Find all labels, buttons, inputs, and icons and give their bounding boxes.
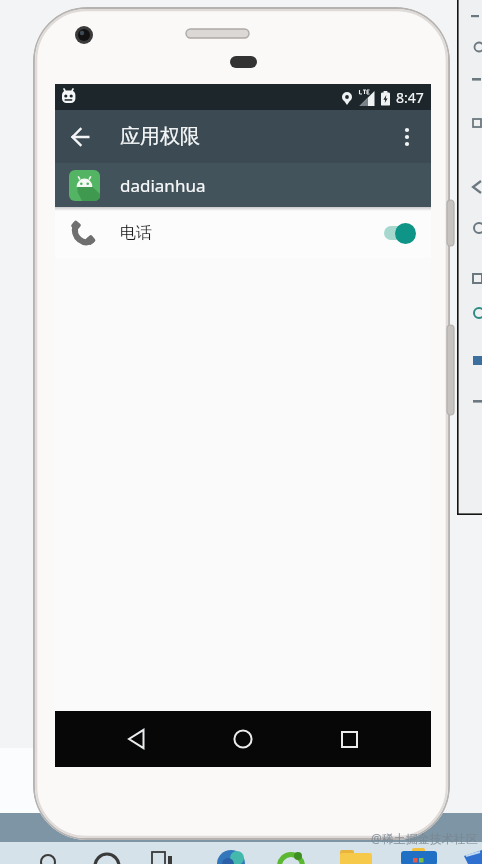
button[interactable] bbox=[457, 160, 482, 200]
staticText: 8:47 bbox=[396, 88, 424, 107]
button[interactable] bbox=[198, 842, 264, 864]
button[interactable] bbox=[457, 80, 482, 120]
button[interactable] bbox=[264, 842, 330, 864]
button[interactable] bbox=[457, 200, 482, 240]
button[interactable] bbox=[132, 842, 198, 864]
staticText: dadianhua bbox=[120, 174, 206, 197]
button[interactable] bbox=[396, 842, 462, 864]
button[interactable]: 电话 bbox=[55, 207, 431, 258]
button[interactable]: dadianhua bbox=[55, 163, 431, 207]
button[interactable] bbox=[61, 117, 101, 157]
staticText: @稀土掘金技术社区 bbox=[371, 830, 478, 846]
button[interactable] bbox=[391, 121, 423, 153]
button[interactable] bbox=[457, 240, 482, 280]
button[interactable] bbox=[384, 218, 417, 248]
button[interactable] bbox=[457, 0, 482, 40]
button[interactable] bbox=[330, 842, 396, 864]
button[interactable] bbox=[113, 715, 161, 763]
button[interactable] bbox=[457, 120, 482, 160]
button[interactable] bbox=[325, 715, 373, 763]
button[interactable] bbox=[66, 842, 132, 864]
button[interactable] bbox=[457, 40, 482, 80]
button[interactable] bbox=[219, 715, 267, 763]
button[interactable] bbox=[457, 280, 482, 320]
staticText: 应用权限 bbox=[120, 124, 200, 149]
staticText: 电话 bbox=[120, 223, 152, 243]
button[interactable] bbox=[0, 842, 66, 864]
